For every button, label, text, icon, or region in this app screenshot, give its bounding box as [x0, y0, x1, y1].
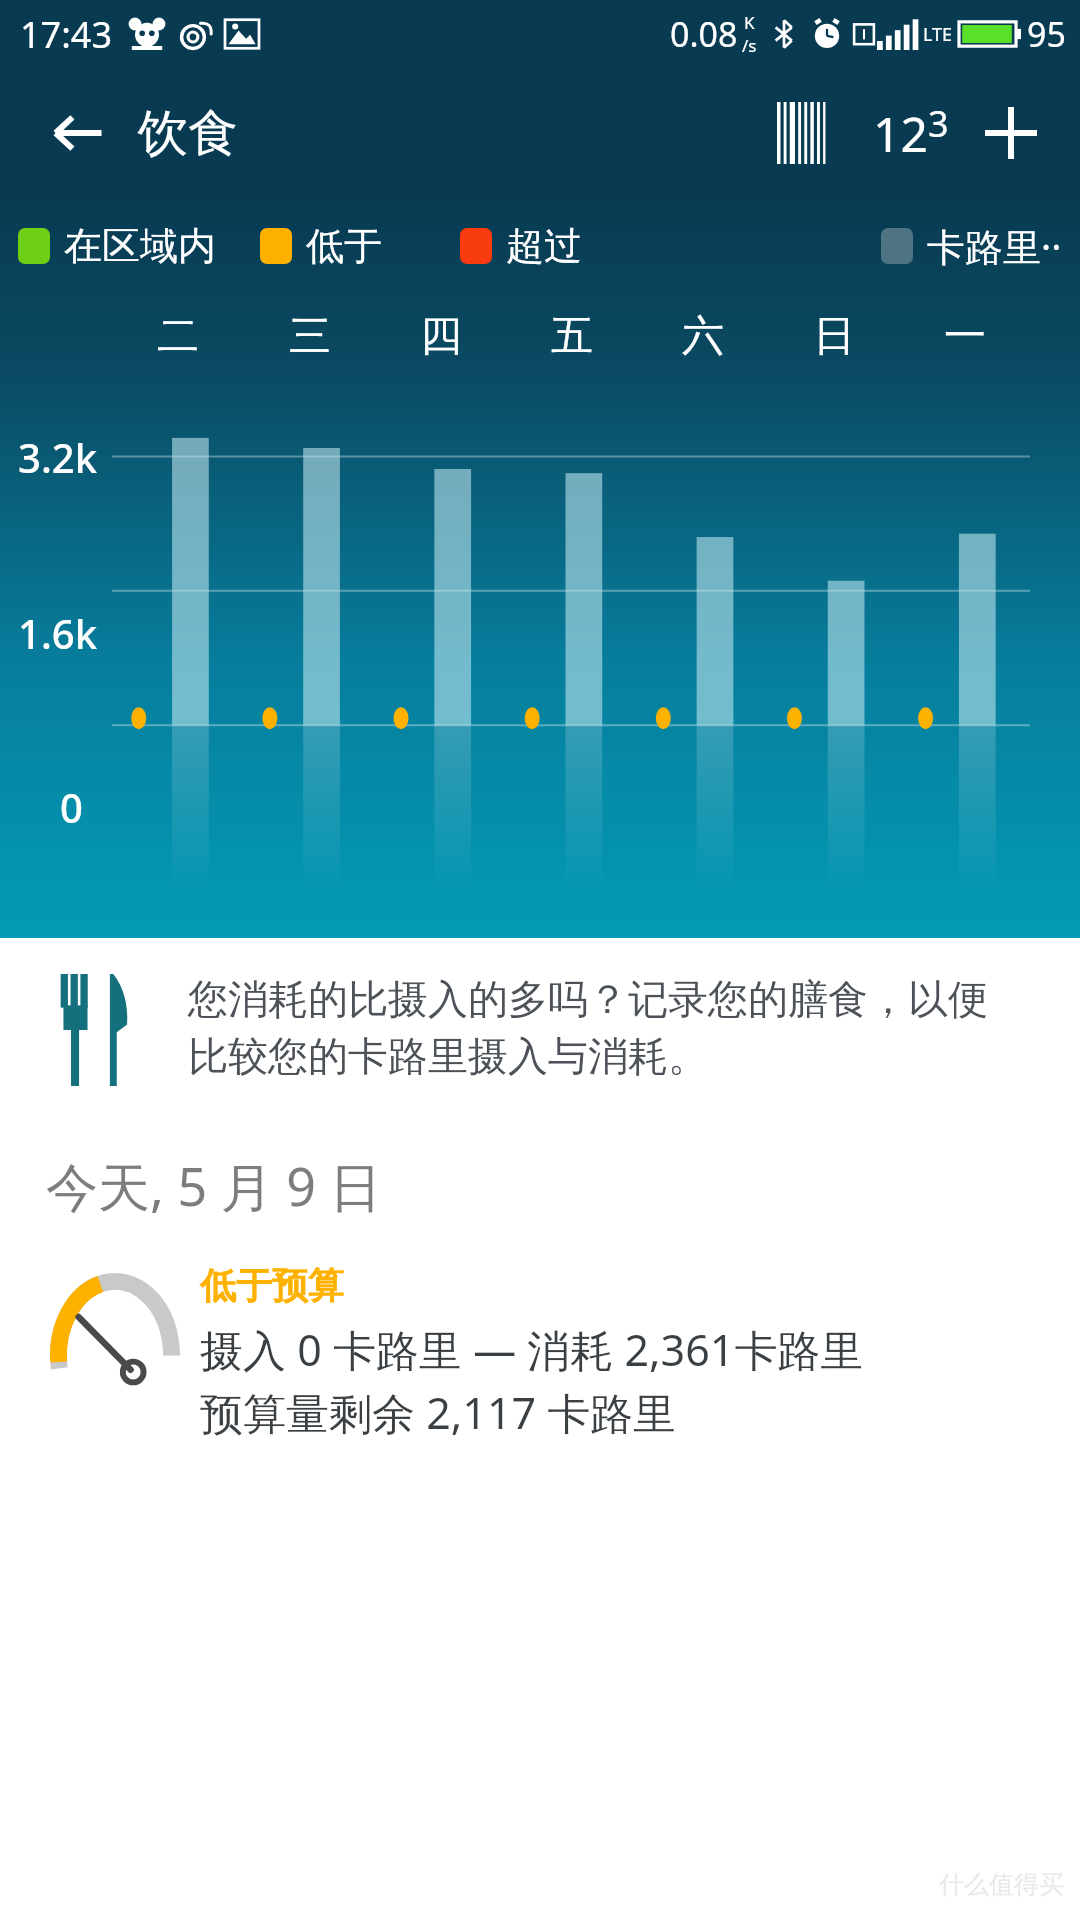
staticText: 在区域内 — [64, 222, 216, 270]
staticText: 四 — [420, 310, 462, 363]
button[interactable]: Add — [966, 88, 1056, 178]
staticText: 12 — [873, 101, 928, 166]
staticText: 3.2k — [18, 430, 97, 484]
button[interactable]: 您消耗的比摄入的多吗？记录您的膳食，以便比较您的卡路里摄入与消耗。 — [60, 974, 1020, 1086]
button[interactable]: 超过 — [460, 222, 582, 270]
staticText: 日 — [813, 310, 855, 363]
staticText: 预算量剩余 2,117 卡路里 — [200, 1383, 677, 1442]
staticText: 三 — [289, 310, 331, 363]
staticText: 低于 — [306, 222, 382, 270]
button[interactable]: 低于 — [260, 222, 382, 270]
staticText: 0.08 — [670, 11, 738, 57]
staticText: 五 — [551, 310, 593, 363]
staticText: 一 — [944, 310, 986, 363]
staticText: 卡路里·· — [927, 220, 1062, 272]
staticText: 饮食 — [138, 102, 238, 165]
staticText: 什么值得买 — [939, 1869, 1064, 1900]
staticText: 17:43 — [20, 10, 113, 59]
staticText: K — [744, 11, 755, 34]
staticText: 今天, 5 月 9 日 — [46, 1150, 382, 1221]
button[interactable]: 在区域内 — [18, 222, 216, 270]
staticText: 六 — [682, 310, 724, 363]
staticText: 0 — [60, 780, 83, 834]
staticText: 低于预算 — [200, 1263, 344, 1308]
staticText: 您消耗的比摄入的多吗？记录您的膳食，以便比较您的卡路里摄入与消耗。 — [188, 974, 1020, 1082]
staticText: 3 — [928, 99, 949, 148]
staticText: 1.6k — [18, 606, 97, 660]
button[interactable]: Scan barcode — [756, 83, 856, 183]
staticText: 二 — [157, 310, 199, 363]
staticText: /s — [742, 34, 757, 57]
button[interactable]: Back — [42, 97, 114, 169]
button[interactable]: 低于预算 — [40, 1263, 1056, 1442]
button[interactable]: Enter calories — [856, 78, 966, 188]
staticText: LTE — [923, 22, 953, 47]
button[interactable]: 卡路里·· — [881, 220, 1062, 272]
staticText: 摄入 0 卡路里 — 消耗 2,361卡路里 — [200, 1320, 864, 1379]
staticText: 超过 — [506, 222, 582, 270]
staticText: 95 — [1027, 11, 1066, 57]
